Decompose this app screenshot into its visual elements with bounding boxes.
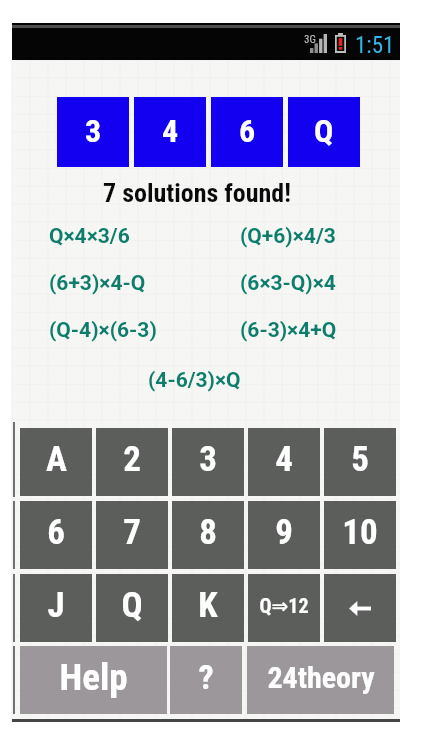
button[interactable]: Q [288,97,360,167]
button[interactable]: 6 [20,501,92,569]
staticText: K [198,585,218,626]
button[interactable]: 3 [57,97,129,167]
button[interactable]: 24theory [247,646,394,714]
staticText: 3 [199,439,217,480]
staticText: (Q-4)×(6-3) [49,318,157,343]
staticText: 2 [123,439,141,480]
staticText: 9 [275,512,293,553]
staticText: (6×3-Q)×4 [240,271,336,296]
button[interactable]: ? [170,646,242,714]
staticText: 4 [275,439,293,480]
button[interactable]: 8 [172,501,244,569]
button[interactable]: Backspace [324,574,396,642]
button[interactable]: (6×3-Q)×4 [240,271,336,296]
button[interactable]: J [20,574,92,642]
staticText: J [47,585,65,626]
staticText: (6-3)×4+Q [240,318,337,343]
staticText: Q×4×3/6 [49,224,130,249]
staticText: 8 [199,512,217,553]
staticText: 3 [85,112,102,150]
button[interactable]: Q×4×3/6 [49,224,130,249]
button[interactable]: 10 [324,501,396,569]
staticText: 24theory [267,660,375,695]
button[interactable]: 2 [96,428,168,496]
staticText: 3G [304,33,316,46]
button[interactable]: (6-3)×4+Q [240,318,337,343]
staticText: 7 [123,512,141,553]
staticText: (6+3)×4-Q [49,271,146,296]
button[interactable]: 5 [324,428,396,496]
staticText: 10 [342,512,378,553]
button[interactable]: 3 [172,428,244,496]
staticText: 4 [162,112,179,150]
staticText: 7 solutions found! [103,178,291,208]
button[interactable]: (Q-4)×(6-3) [49,318,157,343]
button[interactable]: A [20,428,92,496]
button[interactable]: (Q+6)×4/3 [240,224,336,249]
button[interactable]: (4-6/3)×Q [148,368,241,393]
button[interactable]: Q⇒12 [248,574,320,642]
staticText: (Q+6)×4/3 [240,224,336,249]
staticText: Q [121,585,143,626]
staticText: Help [59,656,128,699]
staticText: Q [314,112,334,150]
button[interactable]: Q [96,574,168,642]
button[interactable]: 6 [211,97,283,167]
staticText: 6 [239,112,256,150]
button[interactable]: 4 [248,428,320,496]
button[interactable]: Help [20,646,167,714]
button[interactable]: K [172,574,244,642]
staticText: A [46,439,67,480]
staticText: 5 [351,439,369,480]
staticText: Q⇒12 [259,594,309,617]
button[interactable]: 9 [248,501,320,569]
staticText: 1:51 [355,32,395,59]
staticText: 6 [47,512,65,553]
button[interactable]: (6+3)×4-Q [49,271,146,296]
button[interactable]: 7 [96,501,168,569]
button[interactable]: 4 [134,97,206,167]
staticText: ? [198,657,214,697]
staticText: (4-6/3)×Q [148,368,241,393]
